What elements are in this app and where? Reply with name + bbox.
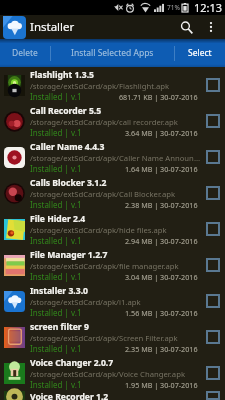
button[interactable]: Search	[173, 15, 199, 39]
button[interactable]: Select Voice Changer 2.0.7	[200, 355, 225, 391]
staticText: Installed | v.1	[30, 307, 82, 318]
button[interactable]: Select Installer 3.3.0	[200, 283, 225, 319]
staticText: Caller Name 4.4.3	[30, 141, 105, 153]
staticText: Installer 3.3.0	[30, 285, 89, 297]
button[interactable]: screen filter 9	[0, 319, 225, 355]
staticText: 2.38 MB | 30-07-2016	[125, 200, 198, 210]
button[interactable]: Select File Manager 1.2.7	[200, 247, 225, 283]
staticText: Installed | v.1	[30, 379, 82, 390]
button[interactable]: More options	[199, 15, 223, 39]
staticText: Call Recorder 5.5	[30, 105, 102, 117]
staticText: Installed | v.1	[30, 199, 82, 210]
staticText: Calls Blocker 3.1.2	[30, 177, 107, 189]
staticText: File Manager 1.2.7	[30, 249, 108, 261]
staticText: 3.64 MB | 30-07-2016	[125, 128, 198, 138]
button[interactable]: File Manager 1.2.7	[0, 247, 225, 283]
staticText: Installed | v.1	[30, 235, 82, 246]
staticText: Installed | v.1	[30, 271, 82, 282]
staticText: /storage/extSdCard/apk/hide files.apk	[30, 225, 167, 235]
staticText: File Hider 2.4	[30, 213, 86, 225]
staticText: 71%	[167, 3, 180, 12]
button[interactable]: Install Selected Apps	[51, 39, 174, 67]
button[interactable]: Caller Name 4.4.3	[0, 139, 225, 175]
button[interactable]: Voice Recorder 1.2	[0, 391, 225, 400]
staticText: Install Selected Apps	[71, 47, 154, 59]
staticText: /storage/extSdCard/apk/Flashlight.apk	[30, 81, 170, 91]
staticText: /storage/extSdCard/apk/Voice Changer.apk	[30, 369, 185, 379]
staticText: /storage/extSdCard/apk/i1.apk	[30, 297, 141, 307]
staticText: Select	[188, 47, 212, 59]
button[interactable]: Select File Hider 2.4	[200, 211, 225, 247]
staticText: Installed | v.1	[30, 163, 82, 174]
staticText: Installed | v.1	[30, 91, 82, 102]
staticText: screen filter 9	[30, 321, 89, 333]
staticText: 1.64 MB | 30-07-2016	[125, 164, 198, 174]
staticText: 681.71 KB | 30-07-2016	[119, 92, 198, 102]
staticText: Flashlight 1.3.5	[30, 69, 95, 81]
button[interactable]: Flashlight 1.3.5	[0, 67, 225, 103]
button[interactable]: Select Call Recorder 5.5	[200, 103, 225, 139]
staticText: 12:13	[194, 0, 223, 15]
button[interactable]: Select	[175, 39, 225, 67]
button[interactable]: Voice Changer 2.0.7	[0, 355, 225, 391]
button[interactable]: Delete	[0, 39, 50, 67]
staticText: Voice Recorder 1.2	[30, 391, 109, 400]
staticText: 1.95 MB | 30-07-2016	[125, 380, 198, 390]
staticText: /storage/extSdCard/apk/file manager.apk	[30, 261, 179, 271]
staticText: Installed | v.1	[30, 343, 82, 354]
staticText: Installer	[30, 19, 75, 35]
button[interactable]: Select screen filter 9	[200, 319, 225, 355]
staticText: /storage/extSdCard/apk/Caller Name Annou…	[30, 153, 200, 163]
button[interactable]: Calls Blocker 3.1.2	[0, 175, 225, 211]
button[interactable]: Select Caller Name 4.4.3	[200, 139, 225, 175]
staticText: 1.56 MB | 30-07-2016	[125, 308, 198, 318]
staticText: 2.94 MB | 30-07-2016	[125, 236, 198, 246]
button[interactable]: File Hider 2.4	[0, 211, 225, 247]
button[interactable]: Installer 3.3.0	[0, 283, 225, 319]
button[interactable]: Call Recorder 5.5	[0, 103, 225, 139]
staticText: 2.35 MB | 30-07-2016	[125, 344, 198, 354]
staticText: /storage/extSdCard/apk/Screen Filter.apk	[30, 333, 178, 343]
staticText: Voice Changer 2.0.7	[30, 357, 114, 369]
staticText: /storage/extSdCard/apk/call recorder.apk	[30, 117, 178, 127]
button[interactable]: Select Calls Blocker 3.1.2	[200, 175, 225, 211]
button[interactable]: Select Voice Recorder 1.2	[200, 391, 225, 400]
staticText: /storage/extSdCard/apk/Call Blocker.apk	[30, 189, 176, 199]
staticText: Delete	[12, 47, 38, 59]
staticText: Installed | v.1	[30, 127, 82, 138]
staticText: 3.04 MB | 30-07-2016	[125, 272, 198, 282]
button[interactable]: Select Flashlight 1.3.5	[200, 67, 225, 103]
